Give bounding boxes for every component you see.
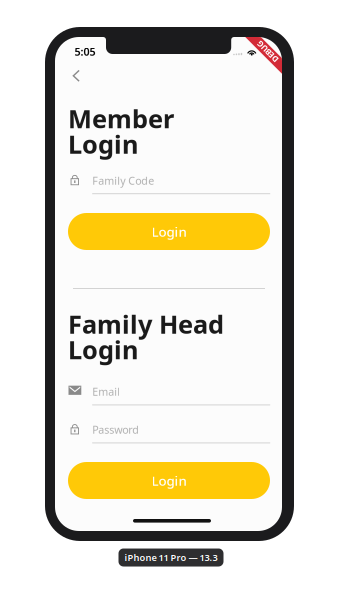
button[interactable]: Family Code: [68, 173, 270, 194]
staticText: Family Head: [68, 307, 224, 341]
staticText: Login: [68, 127, 138, 161]
button[interactable]: Login: [68, 462, 270, 499]
staticText: Password: [92, 423, 139, 437]
staticText: Member: [68, 102, 174, 135]
staticText: Login: [151, 223, 186, 240]
staticText: Email: [92, 385, 120, 399]
staticText: 5:05: [74, 44, 95, 59]
button[interactable]: Email: [68, 384, 270, 405]
button[interactable]: Password: [68, 422, 270, 443]
button[interactable]: Back: [64, 64, 88, 88]
button[interactable]: Login: [68, 213, 270, 250]
staticText: Login: [151, 472, 186, 489]
staticText: Login: [68, 333, 138, 366]
staticText: DEBUG: [254, 46, 281, 57]
staticText: Family Code: [92, 173, 154, 188]
staticText: iPhone 11 Pro — 13.3: [124, 551, 217, 564]
